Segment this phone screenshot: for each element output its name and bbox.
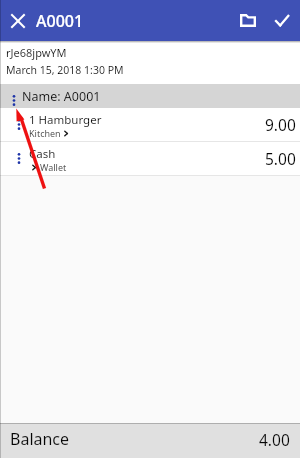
staticText: Wallet (40, 161, 67, 173)
button[interactable]: Cash (0, 142, 300, 175)
button[interactable]: Save (264, 0, 300, 41)
staticText: Name: A0001 (22, 88, 101, 105)
button[interactable]: 1 Hamburger (0, 108, 300, 141)
staticText: 4.00 (259, 429, 290, 450)
staticText: 9.00 (265, 114, 296, 135)
staticText: Cash (29, 146, 56, 162)
staticText: Balance (10, 428, 70, 450)
staticText: 5.00 (265, 148, 296, 169)
staticText: rJe68jpwYM (6, 45, 67, 60)
staticText: Kitchen (29, 127, 61, 139)
button[interactable]: Name: A0001 (0, 84, 300, 108)
button[interactable]: Balance (0, 424, 300, 458)
button[interactable]: Close (0, 0, 36, 41)
staticText: 1 Hamburger (29, 112, 102, 128)
staticText: March 15, 2018 1:30 PM (6, 63, 124, 77)
button[interactable]: Folder (226, 0, 264, 41)
staticText: A0001 (36, 10, 84, 32)
